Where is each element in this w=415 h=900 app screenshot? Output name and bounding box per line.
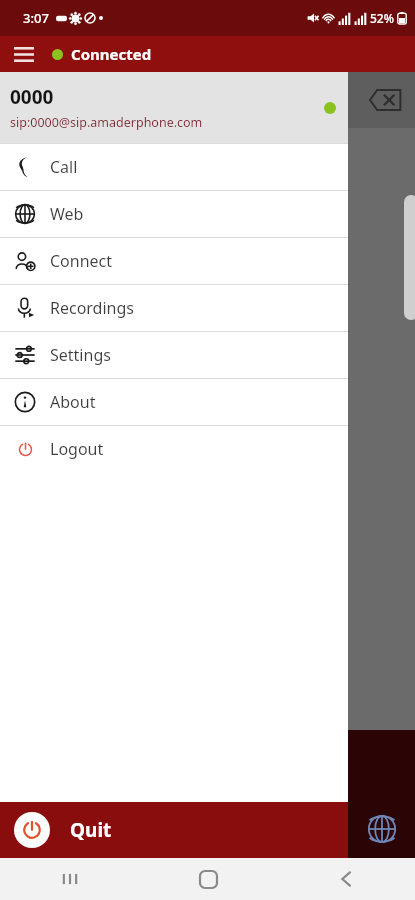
staticText: 0000 [10, 84, 54, 110]
button[interactable]: Call [0, 144, 348, 190]
button[interactable]: Web [0, 191, 348, 237]
staticText: Connect [50, 250, 113, 272]
staticText: Recordings [50, 297, 134, 319]
button[interactable]: Home [139, 858, 277, 900]
staticText: Logout [50, 438, 104, 460]
button[interactable]: Recents [0, 858, 139, 900]
staticText: Call [50, 156, 78, 178]
staticText: Connected [71, 44, 152, 64]
staticText: Web [50, 203, 84, 225]
button[interactable]: Connect [0, 238, 348, 284]
button[interactable]: Quit [0, 802, 348, 858]
button[interactable]: 0000 [0, 72, 348, 143]
staticText: 3:07 [23, 9, 49, 27]
button[interactable]: Web [348, 800, 415, 858]
button[interactable]: Logout [0, 426, 348, 472]
staticText: sip:0000@sip.amaderphone.com [10, 114, 203, 131]
button[interactable]: Back [277, 858, 415, 900]
button[interactable]: Backspace [348, 72, 415, 128]
staticText: 52% [370, 10, 394, 26]
button[interactable]: Recordings [0, 285, 348, 331]
button[interactable]: About [0, 379, 348, 425]
staticText: Quit [70, 817, 112, 843]
staticText: Settings [50, 344, 111, 366]
button[interactable]: Open navigation drawer [8, 38, 40, 70]
staticText: About [50, 391, 96, 413]
button[interactable]: Settings [0, 332, 348, 378]
